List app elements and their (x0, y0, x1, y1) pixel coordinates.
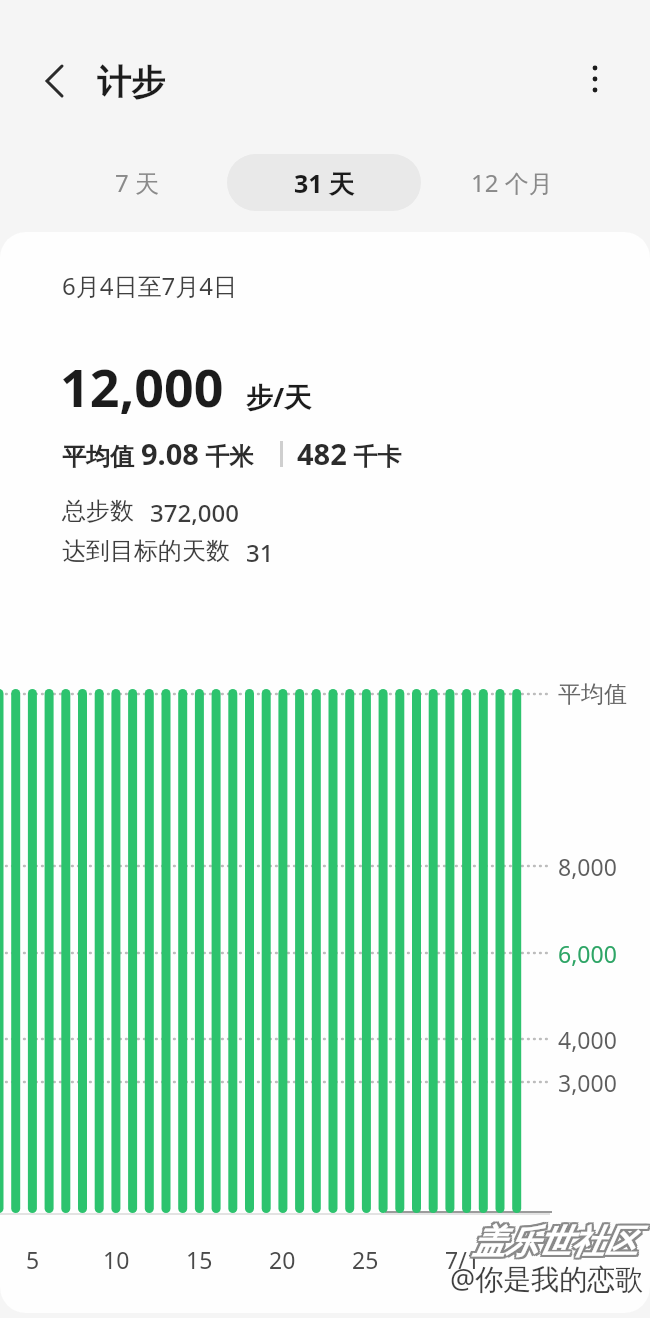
staticText: 盖乐世社区 (474, 1221, 639, 1263)
staticText: 盖乐世社区 (472, 1219, 637, 1261)
staticText: 平均值 (558, 680, 627, 709)
staticText: 7/1 (445, 1244, 480, 1275)
staticText: 31 (246, 536, 274, 569)
staticText: 总步数 (62, 496, 134, 526)
staticText: 9.08 (141, 434, 199, 473)
staticText: 25 (352, 1244, 379, 1275)
button[interactable] (571, 57, 619, 105)
staticText: 6月4日至7月4日 (62, 269, 237, 302)
button[interactable]: 12 个月 (437, 154, 587, 211)
button[interactable]: 7 天 (62, 154, 212, 211)
staticText: 盖乐世社区 (474, 1219, 639, 1261)
staticText: 盖乐世社区 (470, 1221, 635, 1263)
staticText: 12 个月 (471, 166, 553, 199)
staticText: @你是我的恋歌 (450, 1259, 644, 1297)
staticText: 372,000 (150, 496, 239, 529)
staticText: 6,000 (558, 938, 617, 969)
staticText: 12,000 (60, 351, 224, 422)
button[interactable]: 31 天 (227, 154, 421, 211)
staticText: 盖乐世社区 (470, 1223, 635, 1265)
staticText: 盖乐世社区 (474, 1223, 639, 1265)
staticText: 计步 (97, 61, 165, 104)
staticText: 5 (26, 1244, 40, 1275)
button[interactable] (31, 57, 79, 105)
staticText: 20 (269, 1244, 296, 1275)
staticText: 7 天 (115, 166, 159, 199)
staticText: 4,000 (558, 1024, 617, 1055)
staticText: 平均值 (62, 439, 141, 472)
staticText: 达到目标的天数 (62, 536, 230, 566)
staticText: 千米 (199, 439, 254, 472)
staticText: 15 (186, 1244, 213, 1275)
staticText: 8,000 (558, 851, 617, 882)
staticText: 步/天 (246, 378, 312, 415)
staticText: 千卡 (347, 439, 402, 472)
staticText: 10 (103, 1244, 130, 1275)
staticText: 3,000 (558, 1067, 617, 1098)
staticText: 盖乐世社区 (472, 1223, 637, 1265)
staticText: 盖乐世社区 (470, 1219, 635, 1261)
staticText: 31 天 (294, 166, 355, 200)
staticText: 482 (297, 434, 347, 473)
staticText: 盖乐世社区 (472, 1221, 637, 1263)
